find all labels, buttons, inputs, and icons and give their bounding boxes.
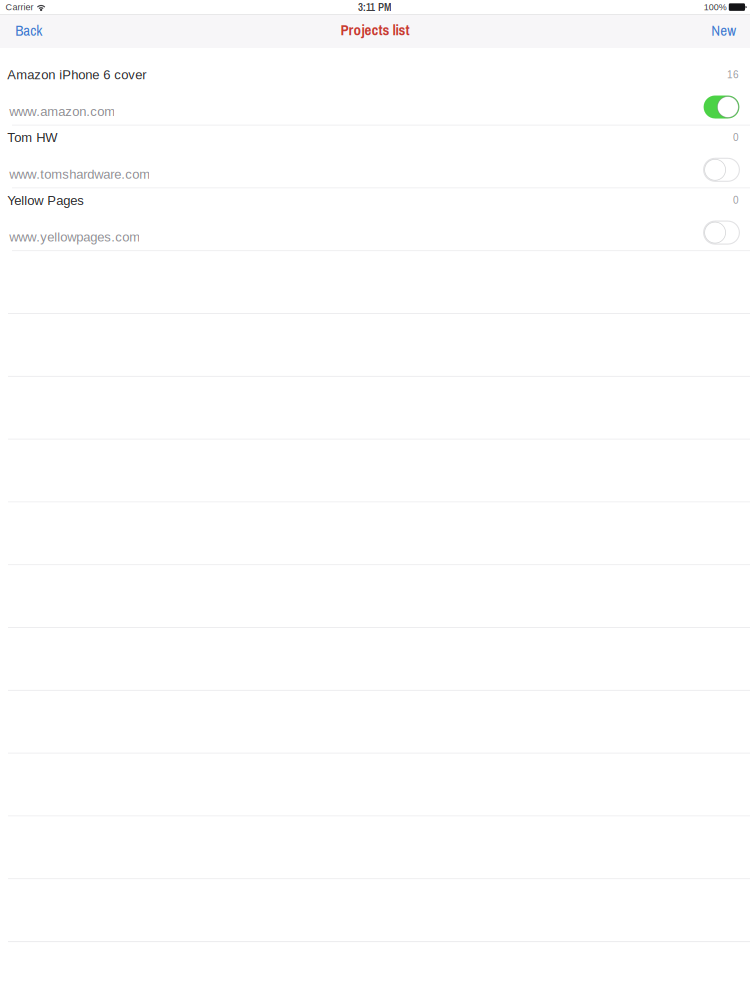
button[interactable]: Toggle www.tomshardware.com <box>704 158 739 181</box>
staticText: 3:11 PM <box>358 0 392 14</box>
staticText: Amazon iPhone 6 cover <box>7 67 146 82</box>
staticText: www.amazon.com <box>9 104 115 119</box>
staticText: Back <box>15 20 42 40</box>
button[interactable]: Back <box>0 15 54 48</box>
button[interactable]: Toggle www.amazon.com <box>704 95 739 118</box>
staticText: Yellow Pages <box>7 193 84 208</box>
button[interactable]: Amazon iPhone 6 cover <box>0 63 750 125</box>
staticText: 100% <box>704 2 727 12</box>
button[interactable]: Toggle www.yellowpages.com <box>704 221 739 244</box>
staticText: Projects list <box>340 20 409 40</box>
staticText: www.yellowpages.com <box>9 230 140 244</box>
button[interactable]: New <box>699 15 750 48</box>
staticText: 0 <box>733 195 739 206</box>
staticText: 0 <box>733 132 739 143</box>
staticText: 16 <box>727 69 739 80</box>
staticText: Carrier <box>5 2 33 12</box>
button[interactable]: Yellow Pages <box>0 188 750 250</box>
staticText: Tom HW <box>7 130 57 145</box>
staticText: www.tomshardware.com <box>9 167 150 181</box>
button[interactable]: Tom HW <box>0 126 750 187</box>
staticText: New <box>711 20 736 40</box>
